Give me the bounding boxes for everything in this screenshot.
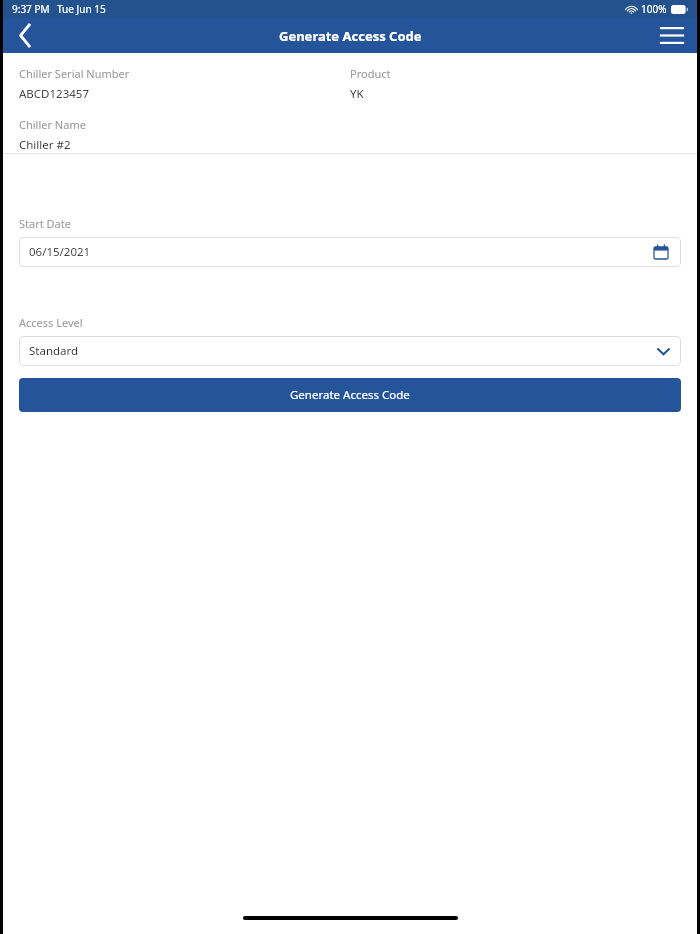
staticText: 9:37 PM: [12, 2, 50, 16]
staticText: Tue Jun 15: [57, 2, 106, 16]
button[interactable]: Pick date: [651, 242, 671, 262]
staticText: Product: [350, 66, 391, 81]
button[interactable]: Back: [3, 18, 47, 53]
staticText: Standard: [29, 343, 79, 359]
staticText: 06/15/2021: [29, 244, 91, 260]
staticText: ABCD123457: [19, 86, 89, 102]
staticText: YK: [350, 86, 364, 102]
staticText: Start Date: [19, 216, 71, 231]
staticText: Chiller Name: [19, 117, 86, 132]
button[interactable]: Menu: [647, 18, 697, 53]
staticText: Chiller Serial Number: [19, 66, 130, 81]
staticText: Generate Access Code: [279, 27, 422, 45]
button[interactable]: Generate Access Code: [19, 378, 681, 412]
staticText: 100%: [641, 2, 667, 16]
button[interactable]: Standard: [19, 336, 681, 366]
staticText: Access Level: [19, 315, 83, 330]
button[interactable]: 06/15/2021: [19, 237, 681, 267]
staticText: Chiller #2: [19, 137, 71, 153]
staticText: Generate Access Code: [290, 387, 410, 403]
